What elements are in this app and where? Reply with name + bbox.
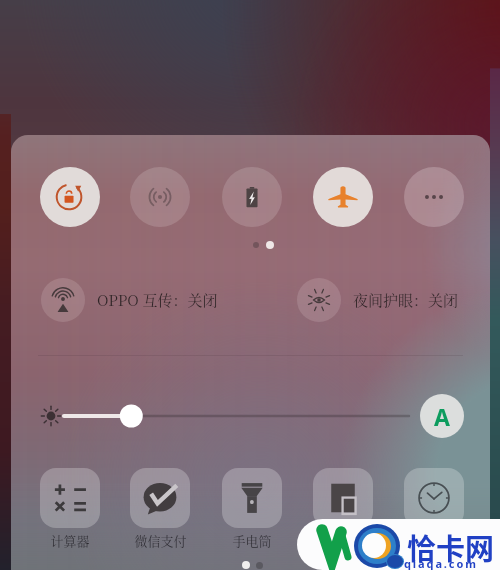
staticText: qiaqa.com <box>404 556 478 570</box>
staticText: 计算器 <box>50 531 90 550</box>
staticText: 截屏 <box>330 531 357 550</box>
button[interactable]: Hotspot <box>130 167 190 227</box>
button[interactable]: 手电筒 <box>218 468 286 550</box>
staticText: 手电筒 <box>232 531 272 550</box>
button[interactable]: More settings <box>404 167 464 227</box>
button[interactable]: 时钟 <box>400 468 468 550</box>
button[interactable]: 截屏 <box>309 468 377 550</box>
button[interactable]: Power saving <box>222 167 282 227</box>
button[interactable]: 计算器 <box>36 468 104 550</box>
button[interactable]: Airplane mode <box>313 167 373 227</box>
button[interactable]: OPPO 互传：关闭 <box>41 278 241 322</box>
button[interactable]: 微信支付 <box>126 468 194 550</box>
button[interactable]: Auto brightness <box>420 394 464 438</box>
button[interactable]: 夜间护眼：关闭 <box>297 278 490 322</box>
staticText: 夜间护眼：关闭 <box>353 289 459 311</box>
button[interactable]: Rotation lock <box>40 167 100 227</box>
staticText: A <box>434 401 450 432</box>
staticText: 时钟 <box>421 531 448 550</box>
staticText: 微信支付 <box>134 531 187 550</box>
staticText: 恰卡网 <box>407 526 495 568</box>
staticText: OPPO 互传：关闭 <box>97 289 218 311</box>
